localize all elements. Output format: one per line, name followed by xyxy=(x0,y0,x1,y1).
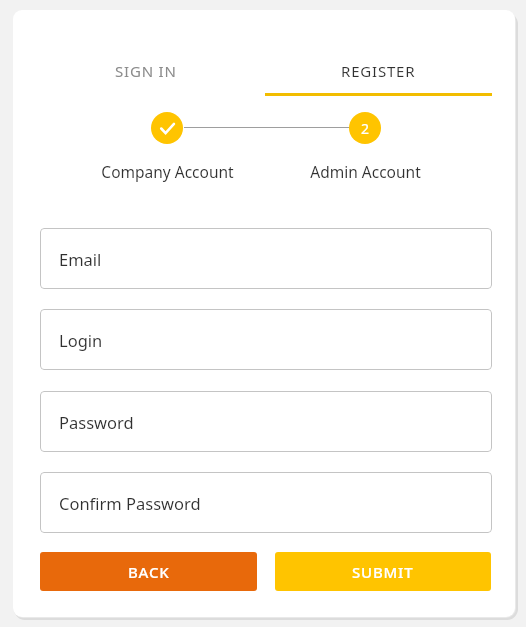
staticText: Password xyxy=(59,411,134,433)
button[interactable]: REGISTER xyxy=(265,48,492,94)
button[interactable]: Email xyxy=(40,228,492,289)
button[interactable]: 2 xyxy=(349,112,381,144)
button[interactable]: SIGN IN xyxy=(27,48,265,94)
staticText: Email xyxy=(59,248,102,270)
staticText: Admin Account xyxy=(310,161,421,182)
staticText: Login xyxy=(59,329,103,351)
button[interactable]: Confirm Password xyxy=(40,472,492,533)
button[interactable]: Password xyxy=(40,391,492,452)
button[interactable]: BACK xyxy=(40,552,257,591)
staticText: SIGN IN xyxy=(115,61,177,81)
staticText: Confirm Password xyxy=(59,492,201,514)
button[interactable]: Company Account step complete xyxy=(151,112,183,144)
staticText: 2 xyxy=(361,119,370,138)
staticText: BACK xyxy=(128,562,170,582)
staticText: SUBMIT xyxy=(352,562,414,582)
staticText: Company Account xyxy=(101,161,234,182)
button[interactable]: Login xyxy=(40,309,492,370)
button[interactable]: SUBMIT xyxy=(275,552,491,591)
staticText: REGISTER xyxy=(341,61,416,81)
